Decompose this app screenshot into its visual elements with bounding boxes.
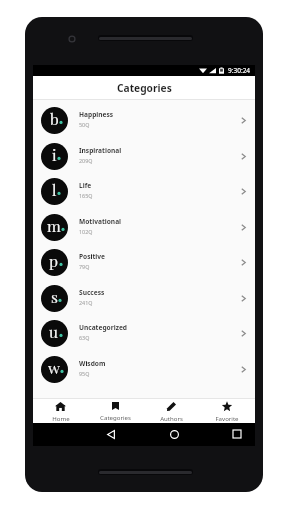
staticText: Wisdom [79,359,106,368]
staticText: 50Q [79,121,90,128]
staticText: p [49,250,59,271]
staticText: 209Q [79,157,93,164]
button[interactable]: l [33,173,255,209]
staticText: Categories [117,81,172,95]
button[interactable]: b [33,102,255,138]
staticText: Positive [79,252,106,261]
button[interactable]: Authors [143,399,199,423]
staticText: 63Q [79,334,90,341]
staticText: s [51,286,58,307]
button[interactable]: s [33,280,255,316]
staticText: Motivational [79,217,122,226]
staticText: 102Q [79,228,93,235]
staticText: Authors [160,414,183,422]
button[interactable]: Back [101,424,121,444]
staticText: Success [79,288,105,297]
staticText: w [48,357,60,378]
staticText: Life [79,181,92,190]
button[interactable]: Categories [88,399,143,423]
staticText: u [49,321,59,342]
staticText: Inspirational [79,146,122,155]
staticText: Happiness [79,110,114,119]
staticText: b [50,108,59,129]
staticText: 165Q [79,192,93,199]
button[interactable]: Home [164,424,184,444]
button[interactable]: m [33,209,255,245]
staticText: l [52,179,57,200]
button[interactable]: Home [33,399,88,423]
button[interactable]: p [33,244,255,280]
staticText: i [52,144,57,165]
button[interactable]: Recent apps [227,424,247,444]
staticText: m [47,215,61,236]
button[interactable]: w [33,351,255,387]
staticText: 241Q [79,299,93,306]
button[interactable]: Favorite [199,399,255,423]
button[interactable]: u [33,315,255,351]
staticText: 79Q [79,263,90,270]
button[interactable]: i [33,138,255,174]
staticText: Favorite [215,414,239,422]
staticText: Home [52,414,70,422]
staticText: 9:30:24 [228,66,251,75]
staticText: 95Q [79,370,90,377]
staticText: Uncategorized [79,323,127,332]
staticText: Categories [100,413,131,421]
